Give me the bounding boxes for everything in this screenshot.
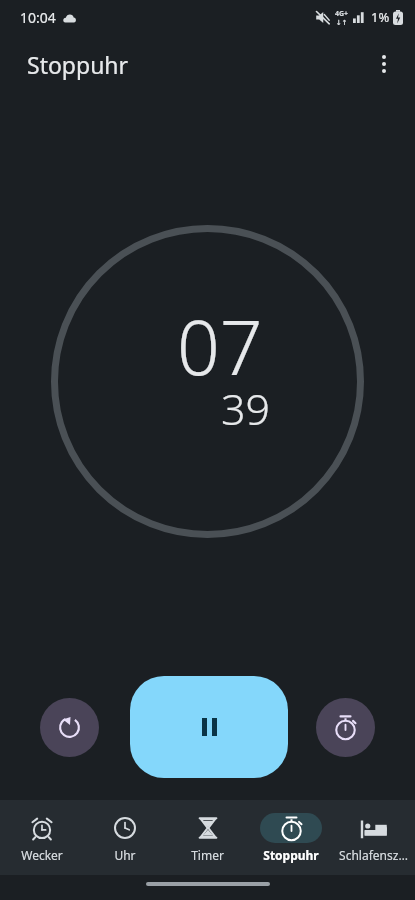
button[interactable]: Reset [40, 698, 99, 757]
staticText: Stoppuhr [27, 49, 129, 80]
button[interactable]: Timer [166, 800, 249, 875]
staticText: ↓↑ [336, 19, 348, 25]
button[interactable]: Wecker [0, 800, 83, 875]
staticText: Schlafensz… [339, 847, 408, 863]
button[interactable]: More options [361, 41, 407, 87]
button[interactable]: Lap [316, 698, 375, 757]
staticText: Uhr [114, 847, 136, 863]
staticText: Timer [191, 847, 224, 863]
button[interactable]: Stoppuhr [249, 800, 332, 875]
staticText: Stoppuhr [263, 847, 319, 863]
button[interactable]: Schlafensz… [332, 800, 415, 875]
staticText: 1% [371, 8, 390, 26]
staticText: 4G+ [335, 9, 349, 19]
staticText: 07 [177, 295, 263, 397]
button[interactable]: Uhr [83, 800, 166, 875]
staticText: 39 [221, 379, 271, 438]
staticText: Wecker [21, 847, 63, 863]
staticText: 10:04 [20, 8, 56, 27]
button[interactable]: Pause [130, 676, 288, 778]
